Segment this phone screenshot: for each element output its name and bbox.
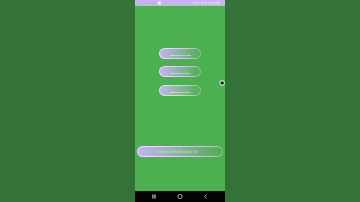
- button[interactable]: DISCONNECT BLE: [159, 85, 201, 96]
- button[interactable]: Home: [165, 191, 195, 202]
- button[interactable]: CONNECT TO WIFI: [159, 48, 201, 59]
- staticText: Connect to My Bluetooth Net: [157, 150, 198, 154]
- staticText: DISCONNECT BLE: [170, 90, 190, 93]
- button[interactable]: Connect to My Bluetooth Net: [137, 146, 223, 157]
- button[interactable]: CONNECT TO BLE: [159, 66, 201, 77]
- button[interactable]: Recents: [135, 191, 165, 202]
- staticText: CONNECT TO WIFI: [170, 53, 191, 56]
- staticText: CONNECT TO BLE: [170, 71, 190, 74]
- button[interactable]: Back: [195, 191, 225, 202]
